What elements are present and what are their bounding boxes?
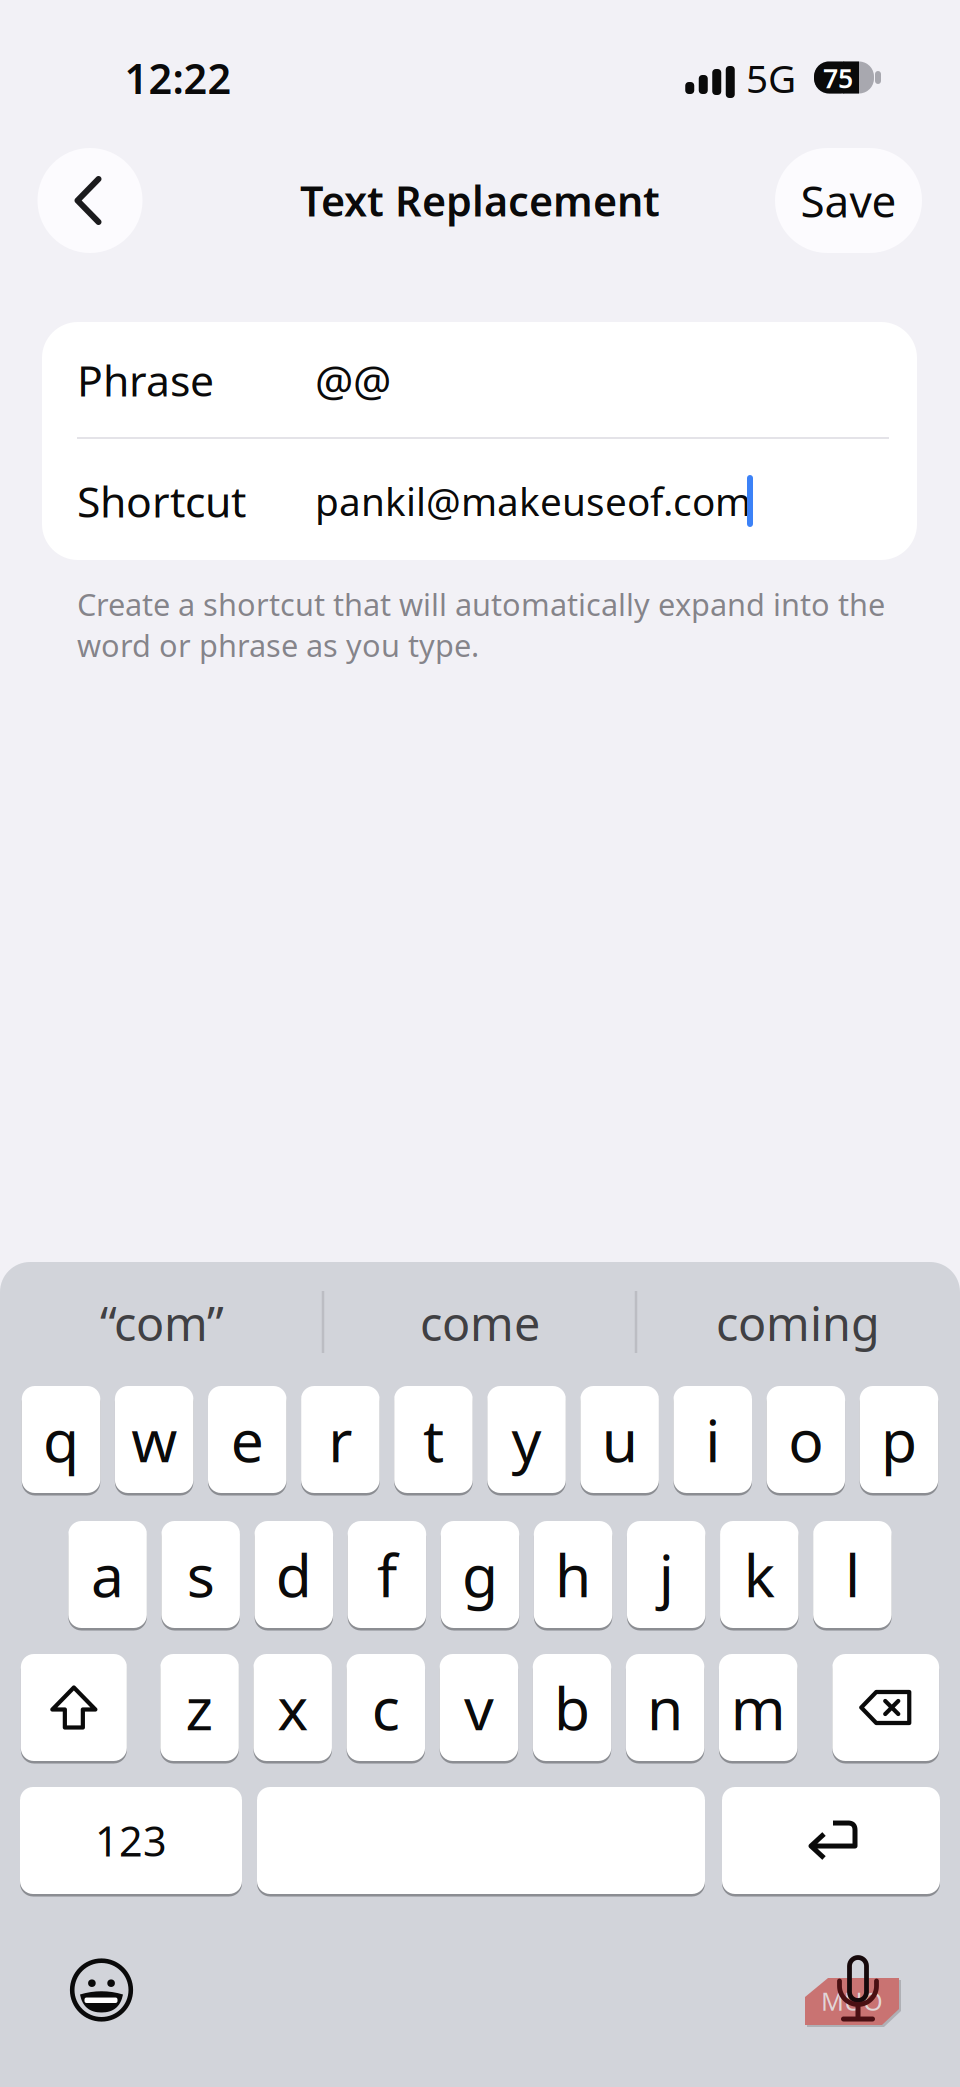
button[interactable]: r: [301, 1384, 380, 1494]
staticText: x: [277, 1668, 308, 1746]
staticText: word or phrase as you type.: [77, 625, 479, 665]
button[interactable]: v: [440, 1652, 518, 1762]
staticText: 123: [95, 1813, 167, 1868]
staticText: g: [462, 1535, 498, 1613]
button[interactable]: m: [719, 1652, 797, 1762]
staticText: s: [187, 1535, 215, 1613]
staticText: pankil@makeuseof.com: [315, 475, 751, 527]
button[interactable]: Space: [257, 1785, 705, 1895]
staticText: k: [744, 1535, 775, 1613]
button[interactable]: j: [627, 1519, 705, 1629]
staticText: Text Replacement: [300, 173, 660, 228]
button[interactable]: e: [208, 1384, 286, 1494]
button[interactable]: s: [161, 1519, 240, 1629]
staticText: 5G: [746, 52, 796, 104]
staticText: Create a shortcut that will automaticall…: [77, 584, 885, 624]
staticText: c: [372, 1668, 400, 1746]
staticText: coming: [716, 1292, 880, 1354]
staticText: h: [555, 1535, 591, 1613]
button[interactable]: Emoji: [66, 1955, 136, 2025]
button[interactable]: Return: [722, 1785, 940, 1895]
button[interactable]: w: [115, 1384, 193, 1494]
staticText: w: [131, 1400, 177, 1478]
button[interactable]: n: [626, 1652, 704, 1762]
staticText: y: [512, 1400, 542, 1478]
button[interactable]: x: [253, 1652, 332, 1762]
button[interactable]: q: [22, 1384, 100, 1494]
button[interactable]: Numbers: [20, 1785, 242, 1895]
staticText: m: [731, 1668, 786, 1746]
staticText: t: [423, 1400, 444, 1478]
staticText: MUO: [821, 1984, 883, 2018]
button[interactable]: f: [348, 1519, 426, 1629]
staticText: b: [554, 1668, 590, 1746]
staticText: u: [602, 1400, 638, 1478]
button[interactable]: k: [720, 1519, 799, 1629]
button[interactable]: l: [813, 1519, 892, 1629]
button[interactable]: z: [160, 1652, 239, 1762]
staticText: f: [377, 1535, 397, 1613]
button[interactable]: d: [255, 1519, 333, 1629]
button[interactable]: Delete: [832, 1652, 939, 1762]
staticText: 12:22: [124, 51, 231, 105]
button[interactable]: “com”: [12, 1278, 312, 1368]
staticText: j: [659, 1535, 674, 1613]
staticText: @@: [315, 352, 391, 408]
staticText: Phrase: [77, 352, 214, 408]
staticText: n: [647, 1668, 683, 1746]
button[interactable]: Dictation: [798, 1935, 908, 2045]
button[interactable]: h: [534, 1519, 612, 1629]
button[interactable]: Back: [37, 148, 142, 253]
staticText: o: [788, 1400, 823, 1478]
button[interactable]: Phrase: [42, 323, 917, 437]
staticText: d: [276, 1535, 312, 1613]
button[interactable]: t: [394, 1384, 473, 1494]
button[interactable]: i: [673, 1384, 752, 1494]
button[interactable]: o: [767, 1384, 845, 1494]
button[interactable]: a: [68, 1519, 147, 1629]
staticText: 75: [823, 60, 853, 96]
button[interactable]: y: [487, 1384, 566, 1494]
staticText: v: [464, 1668, 494, 1746]
button[interactable]: come: [330, 1278, 630, 1368]
staticText: Save: [800, 171, 896, 230]
button[interactable]: Save: [775, 148, 922, 253]
staticText: z: [186, 1668, 214, 1746]
button[interactable]: p: [860, 1384, 938, 1494]
button[interactable]: u: [580, 1384, 659, 1494]
staticText: e: [231, 1400, 264, 1478]
button[interactable]: b: [533, 1652, 611, 1762]
button[interactable]: Shortcut: [42, 441, 917, 561]
staticText: a: [91, 1535, 124, 1613]
button[interactable]: coming: [648, 1278, 948, 1368]
staticText: r: [328, 1400, 352, 1478]
staticText: q: [43, 1400, 79, 1478]
staticText: i: [705, 1400, 720, 1478]
staticText: Shortcut: [77, 473, 246, 529]
staticText: p: [881, 1400, 917, 1478]
button[interactable]: g: [441, 1519, 519, 1629]
button[interactable]: c: [347, 1652, 425, 1762]
button[interactable]: Shift: [21, 1652, 127, 1762]
staticText: l: [845, 1535, 860, 1613]
staticText: come: [420, 1292, 540, 1354]
staticText: “com”: [100, 1292, 224, 1354]
